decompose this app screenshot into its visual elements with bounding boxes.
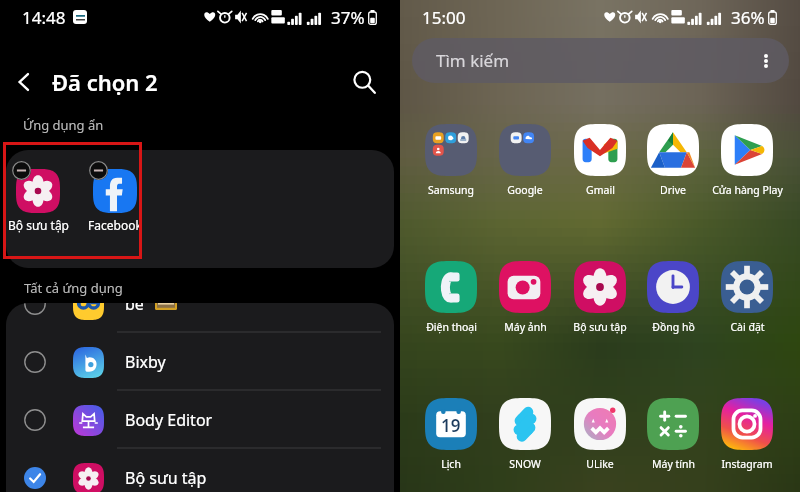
staticText: 19 [441, 414, 461, 437]
staticText: Bộ sưu tập [8, 217, 69, 233]
staticText: 37% [331, 6, 365, 29]
button[interactable]: Máy ảnh [480, 257, 570, 334]
staticText: Facebook [88, 217, 142, 233]
button[interactable]: Bộ sưu tập [555, 257, 645, 334]
staticText: Bộ sưu tập [573, 320, 627, 334]
staticText: Bixby [125, 351, 166, 373]
button[interactable]: Máy tính [628, 394, 718, 471]
button[interactable]: SNOW [480, 394, 570, 471]
staticText: Google [507, 183, 543, 197]
staticText: Tìm kiếm [436, 49, 510, 72]
staticText: Bộ sưu tập [125, 467, 207, 489]
staticText: Instagram [721, 457, 773, 471]
staticText: Tất cả ứng dụng [24, 279, 123, 297]
button[interactable]: Facebook [71, 161, 159, 233]
button[interactable]: Đồng hồ [628, 257, 718, 334]
button[interactable]: ULike [555, 394, 645, 471]
staticText: Điện thoại [426, 320, 477, 334]
button[interactable]: Gmail [555, 120, 645, 197]
staticText: Máy ảnh [504, 320, 547, 334]
staticText: 15:00 [422, 6, 466, 29]
button[interactable]: Cài đặt [702, 257, 792, 334]
button[interactable]: Bộ sưu tập [6, 161, 82, 233]
button[interactable]: Google [480, 120, 570, 197]
staticText: Ứng dụng ẩn [23, 116, 104, 134]
staticText: Lịch [441, 457, 461, 471]
staticText: Body Editor [125, 409, 213, 431]
staticText: Đã chọn 2 [52, 67, 158, 97]
staticText: Samsung [428, 183, 474, 197]
button[interactable]: Body Editor [6, 396, 394, 444]
staticText: Gmail [586, 183, 615, 197]
staticText: be [125, 303, 144, 315]
button[interactable]: Instagram [702, 394, 792, 471]
button[interactable]: Bộ sưu tập [6, 454, 394, 492]
button[interactable]: Samsung [406, 120, 496, 197]
button[interactable]: Cửa hàng Play [702, 120, 792, 197]
staticText: SNOW [509, 457, 541, 471]
button[interactable]: Back [0, 58, 48, 106]
button[interactable]: be [6, 303, 394, 328]
button[interactable]: More options [746, 41, 786, 81]
button[interactable]: Điện thoại [406, 257, 496, 334]
staticText: 36% [731, 6, 765, 29]
staticText: Cài đặt [730, 320, 765, 334]
button[interactable]: Tìm kiếm [412, 38, 789, 83]
staticText: Máy tính [652, 457, 695, 471]
button[interactable]: Drive [628, 120, 718, 197]
staticText: Cửa hàng Play [712, 183, 783, 197]
staticText: Drive [660, 183, 686, 197]
staticText: 14:48 [22, 6, 66, 29]
staticText: ULike [586, 457, 614, 471]
button[interactable]: Search [338, 56, 390, 108]
staticText: Đồng hồ [652, 320, 695, 334]
button[interactable]: Bixby [6, 338, 394, 386]
button[interactable]: 19 [406, 394, 496, 471]
